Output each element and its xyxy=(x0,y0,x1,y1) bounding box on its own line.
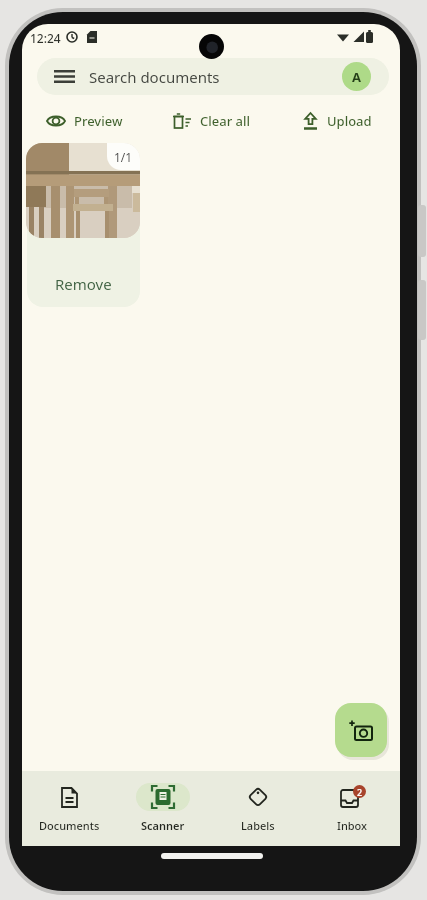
button[interactable]: Labels xyxy=(210,771,305,846)
staticText: Labels xyxy=(241,818,275,833)
button[interactable]: Remove xyxy=(27,155,140,307)
staticText: A xyxy=(352,68,361,86)
button[interactable]: Documents xyxy=(22,771,116,846)
button[interactable]: Preview xyxy=(22,107,148,135)
button[interactable]: 1/1 xyxy=(26,143,140,238)
staticText: 1/1 xyxy=(114,149,133,165)
button[interactable]: Search documents xyxy=(37,58,389,95)
staticText: Remove xyxy=(55,274,112,294)
staticText: 12:24 xyxy=(30,30,61,46)
button[interactable]: A xyxy=(342,62,371,91)
staticText: Inbox xyxy=(337,818,368,833)
staticText: Documents xyxy=(39,818,100,833)
staticText: Search documents xyxy=(89,67,220,87)
button[interactable] xyxy=(335,703,387,757)
button[interactable]: Upload xyxy=(274,107,400,135)
button[interactable]: Scanner xyxy=(116,771,210,846)
staticText: Preview xyxy=(74,112,123,130)
button[interactable]: 2 xyxy=(305,771,400,846)
staticText: Scanner xyxy=(141,818,185,833)
staticText: Clear all xyxy=(200,112,250,130)
button[interactable]: Clear all xyxy=(148,107,274,135)
staticText: 2 xyxy=(357,786,363,798)
staticText: Upload xyxy=(327,112,372,130)
